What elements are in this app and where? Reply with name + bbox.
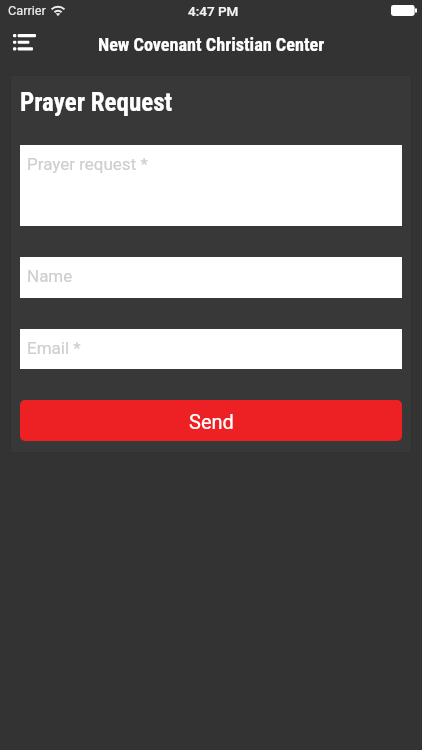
staticText: Email * — [27, 338, 81, 358]
button[interactable]: Prayer request * — [20, 145, 402, 226]
staticText: New Covenant Christian Center — [98, 34, 325, 55]
staticText: Prayer request * — [27, 154, 148, 174]
staticText: Send — [189, 410, 234, 433]
button[interactable]: Open navigation menu — [0, 26, 48, 66]
button[interactable]: Send — [20, 400, 402, 441]
button[interactable]: Name — [20, 257, 402, 298]
staticText: 4:47 PM — [188, 3, 239, 19]
staticText: Carrier — [8, 3, 46, 18]
staticText: Prayer Request — [20, 88, 173, 117]
button[interactable]: Email * — [20, 329, 402, 369]
staticText: Name — [27, 266, 73, 286]
